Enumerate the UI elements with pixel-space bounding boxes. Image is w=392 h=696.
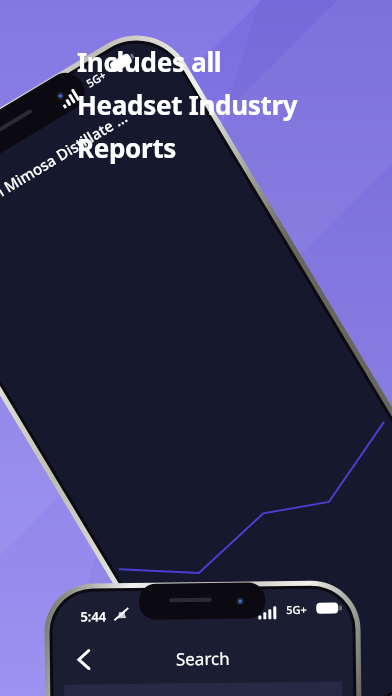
button[interactable]: Includes all Headset Industry Reports (0, 0, 392, 696)
